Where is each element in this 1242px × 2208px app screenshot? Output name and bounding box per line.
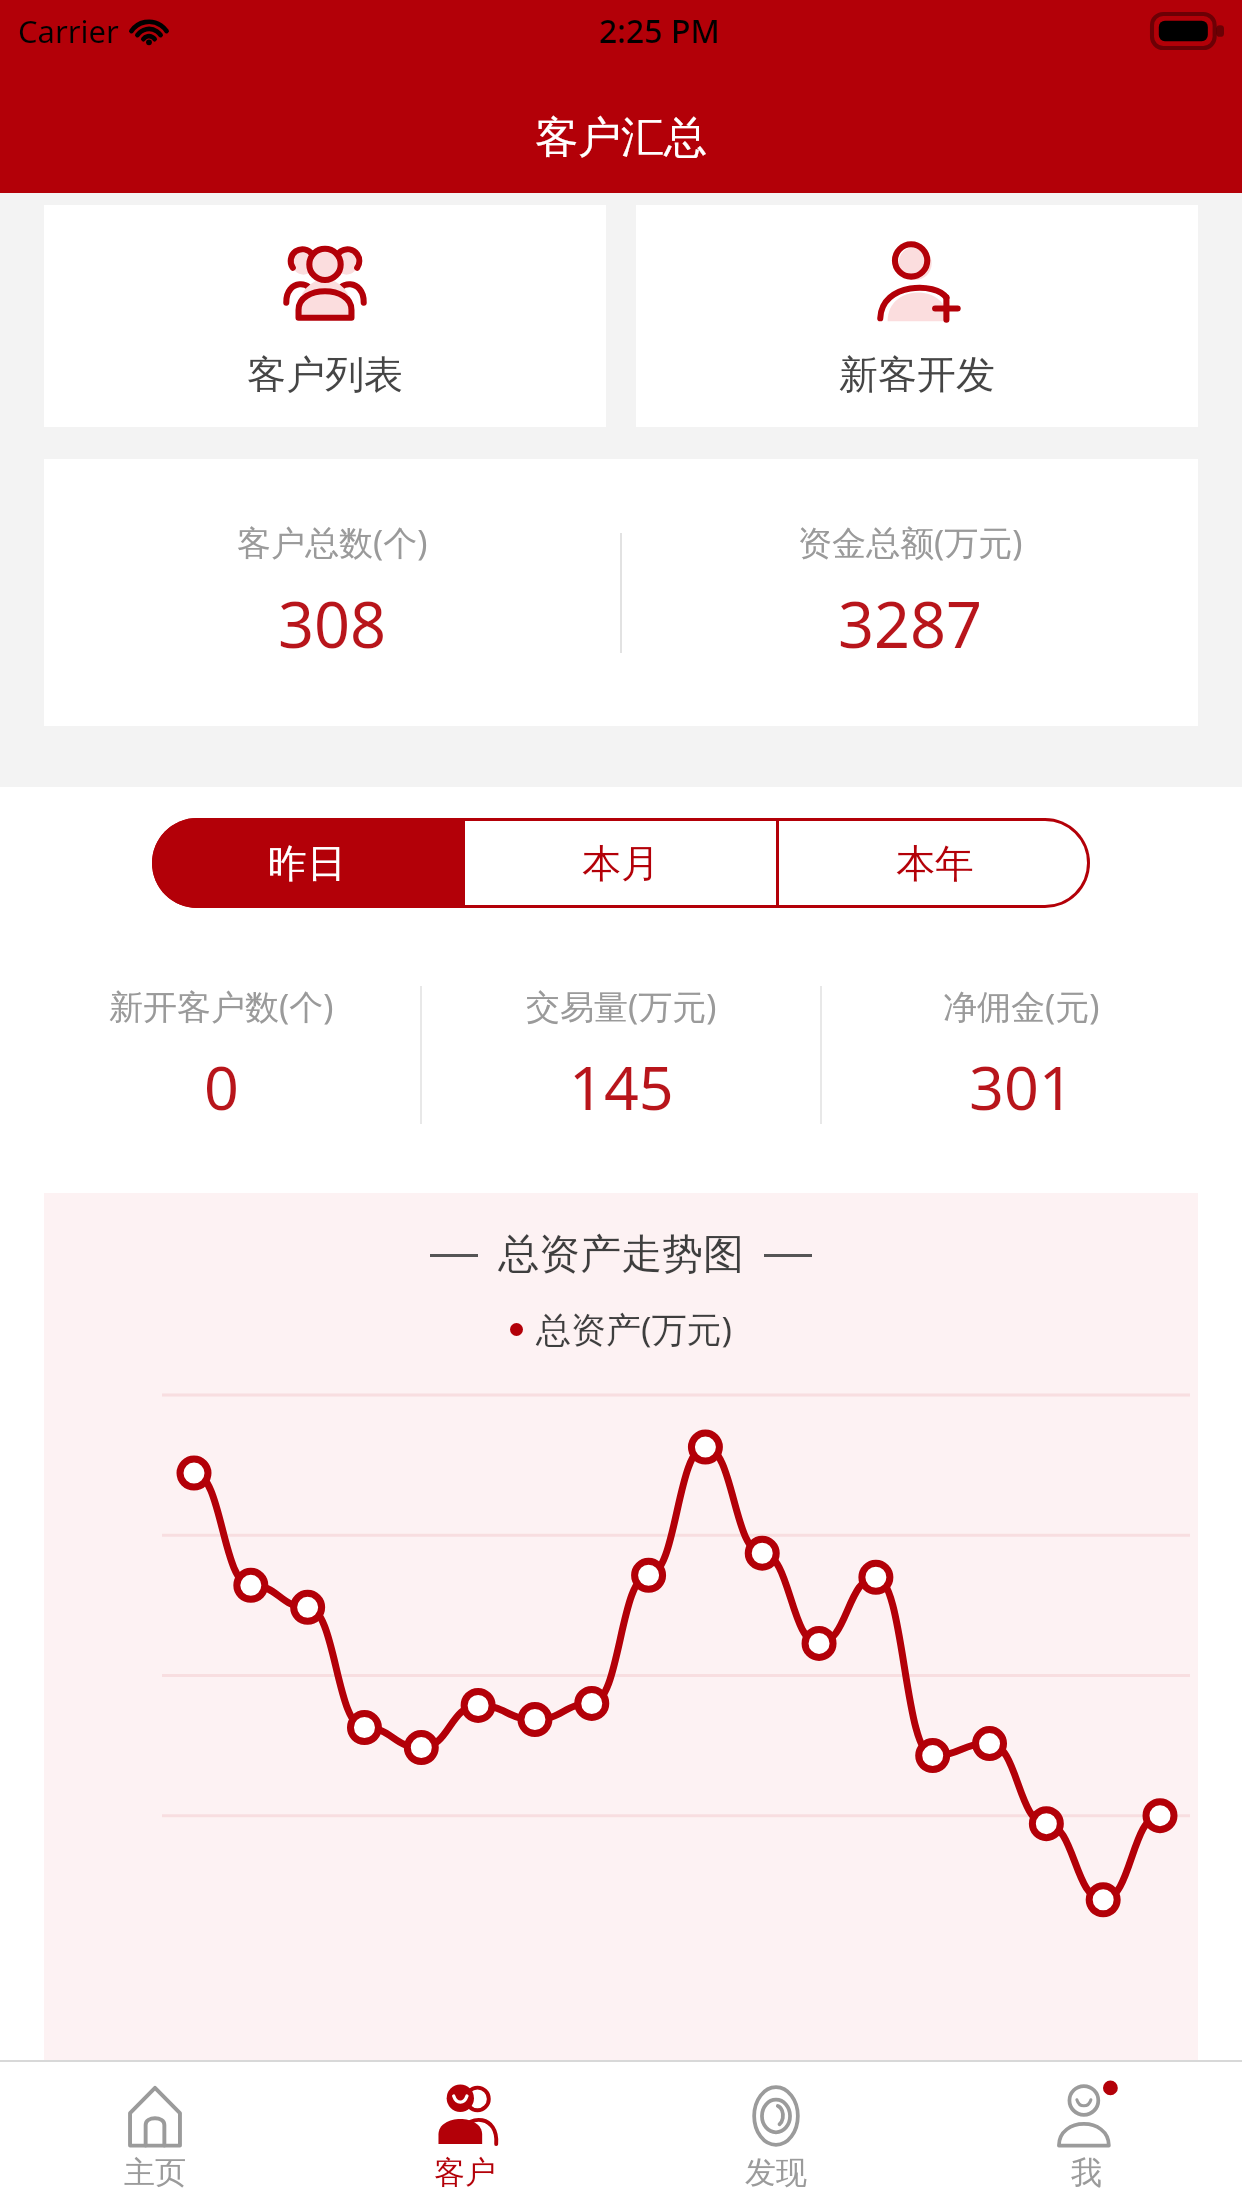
staticText: Carrier xyxy=(18,10,119,52)
button[interactable]: 新客开发 xyxy=(636,205,1198,427)
staticText: 新开客户数(个) xyxy=(109,983,334,1029)
button[interactable]: 发现 xyxy=(620,2062,931,2208)
staticText: 308 xyxy=(278,581,387,667)
button[interactable]: 本月 xyxy=(465,818,776,908)
staticText: 客户 xyxy=(434,2153,496,2192)
button[interactable]: 我 xyxy=(931,2062,1242,2208)
button[interactable]: 本年 xyxy=(779,818,1090,908)
staticText: 客户汇总 xyxy=(535,111,707,165)
staticText: 本年 xyxy=(896,839,974,888)
staticText: 资金总额(万元) xyxy=(798,519,1023,565)
staticText: 总资产(万元) xyxy=(536,1305,733,1353)
button[interactable]: 昨日 xyxy=(152,818,462,908)
staticText: 昨日 xyxy=(268,839,346,888)
staticText: 2:25 PM xyxy=(599,9,720,53)
button[interactable]: 客户 xyxy=(310,2062,620,2208)
staticText: 发现 xyxy=(745,2153,807,2192)
staticText: 新客开发 xyxy=(839,350,995,399)
staticText: 客户列表 xyxy=(247,350,403,399)
button[interactable]: 客户总数(个) xyxy=(44,459,1198,726)
staticText: 3287 xyxy=(838,581,983,667)
staticText: 本月 xyxy=(582,839,660,888)
staticText: 主页 xyxy=(124,2153,186,2192)
staticText: 总资产走势图 xyxy=(498,1229,744,1281)
staticText: 我 xyxy=(1071,2153,1102,2192)
button[interactable]: 客户列表 xyxy=(44,205,606,427)
staticText: 净佣金(元) xyxy=(943,983,1100,1029)
staticText: 0 xyxy=(204,1045,239,1128)
button[interactable]: 主页 xyxy=(0,2062,310,2208)
staticText: 301 xyxy=(969,1045,1074,1128)
staticText: 145 xyxy=(569,1045,674,1128)
staticText: 客户总数(个) xyxy=(237,519,428,565)
staticText: 交易量(万元) xyxy=(526,983,717,1029)
